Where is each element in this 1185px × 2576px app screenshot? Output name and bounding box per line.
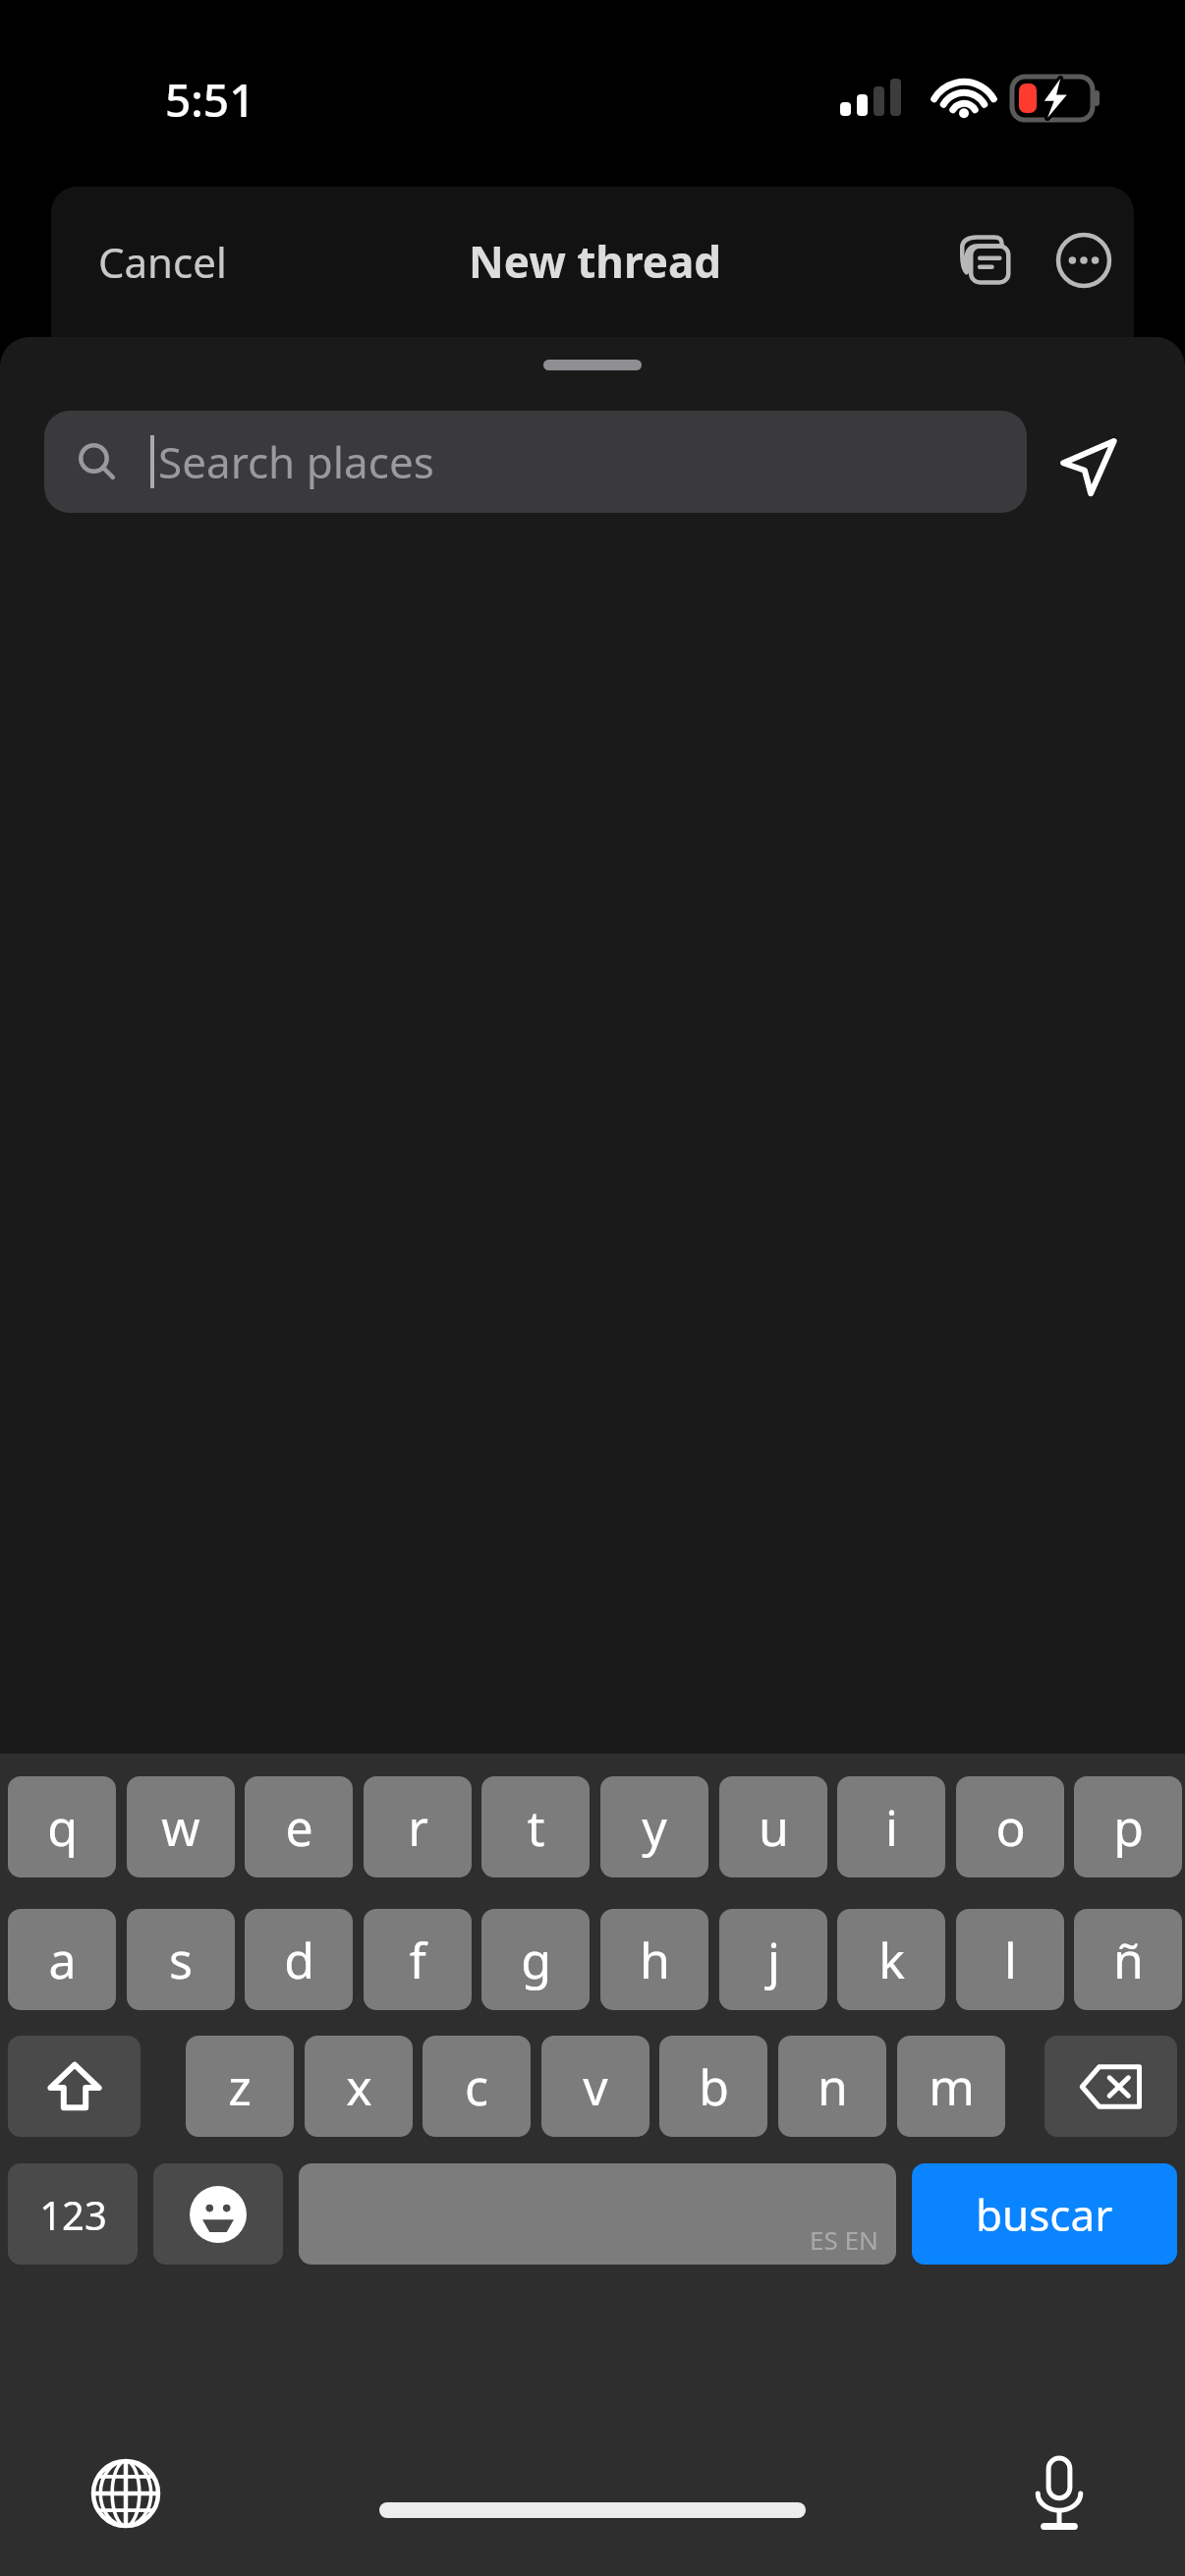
staticText: n	[818, 2053, 848, 2120]
staticText: w	[161, 1794, 200, 1861]
button[interactable]: l	[956, 1909, 1064, 2010]
button[interactable]: o	[956, 1776, 1064, 1877]
button[interactable]: s	[127, 1909, 235, 2010]
staticText: c	[465, 2053, 488, 2120]
staticText: s	[169, 1927, 193, 1993]
button[interactable]: Use current location	[1046, 425, 1129, 508]
staticText: o	[995, 1794, 1026, 1861]
staticText: b	[699, 2053, 729, 2120]
staticText: y	[642, 1794, 667, 1861]
button[interactable]: Space	[299, 2163, 896, 2265]
button[interactable]: Emoji	[153, 2163, 283, 2265]
button[interactable]: q	[8, 1776, 116, 1877]
staticText: q	[47, 1794, 78, 1861]
button[interactable]: v	[541, 2036, 649, 2137]
button[interactable]: Backspace	[1044, 2036, 1177, 2137]
staticText: Search places	[158, 432, 434, 491]
button[interactable]: j	[719, 1909, 827, 2010]
button[interactable]: c	[423, 2036, 531, 2137]
staticText: r	[408, 1794, 428, 1861]
staticText: ñ	[1113, 1927, 1144, 1993]
staticText: v	[583, 2053, 608, 2120]
staticText: u	[759, 1794, 789, 1861]
button[interactable]: h	[600, 1909, 708, 2010]
staticText: f	[409, 1927, 426, 1993]
button[interactable]: w	[127, 1776, 235, 1877]
button[interactable]: i	[837, 1776, 945, 1877]
staticText: New thread	[469, 232, 722, 291]
button[interactable]: d	[245, 1909, 353, 2010]
staticText: a	[48, 1927, 77, 1993]
button[interactable]: z	[186, 2036, 294, 2137]
button[interactable]: Shift	[8, 2036, 141, 2137]
button[interactable]: m	[897, 2036, 1005, 2137]
staticText: e	[285, 1794, 313, 1861]
button[interactable]: a	[8, 1909, 116, 2010]
button[interactable]: b	[659, 2036, 767, 2137]
button[interactable]: n	[778, 2036, 886, 2137]
staticText: i	[885, 1794, 898, 1861]
staticText: t	[527, 1794, 545, 1861]
button[interactable]: u	[719, 1776, 827, 1877]
button[interactable]: buscar	[912, 2163, 1177, 2265]
button[interactable]: Copy thread	[945, 218, 1030, 303]
button[interactable]: Cancel	[98, 234, 227, 290]
button[interactable]: Change keyboard language	[81, 2448, 171, 2539]
staticText: 5:51	[165, 69, 255, 131]
staticText: buscar	[976, 2185, 1113, 2244]
button[interactable]: p	[1074, 1776, 1182, 1877]
button[interactable]: k	[837, 1909, 945, 2010]
button[interactable]: y	[600, 1776, 708, 1877]
button[interactable]: g	[481, 1909, 590, 2010]
staticText: h	[640, 1927, 670, 1993]
button[interactable]: f	[364, 1909, 472, 2010]
button[interactable]: More options	[1042, 218, 1126, 303]
staticText: p	[1113, 1794, 1144, 1861]
staticText: 123	[39, 2188, 107, 2241]
button[interactable]: 123	[8, 2163, 138, 2265]
staticText: g	[521, 1927, 551, 1993]
staticText: m	[929, 2053, 975, 2120]
staticText: ES EN	[810, 2222, 878, 2257]
button[interactable]: e	[245, 1776, 353, 1877]
staticText: l	[1004, 1927, 1017, 1993]
button[interactable]: t	[481, 1776, 590, 1877]
staticText: k	[878, 1927, 905, 1993]
button[interactable]: Voice input	[1014, 2448, 1104, 2539]
staticText: j	[767, 1927, 780, 1993]
button[interactable]: x	[305, 2036, 413, 2137]
staticText: d	[284, 1927, 314, 1993]
button[interactable]: Search places	[44, 411, 1027, 513]
button[interactable]: ñ	[1074, 1909, 1182, 2010]
staticText: z	[228, 2053, 252, 2120]
staticText: x	[346, 2053, 372, 2120]
button[interactable]: r	[364, 1776, 472, 1877]
